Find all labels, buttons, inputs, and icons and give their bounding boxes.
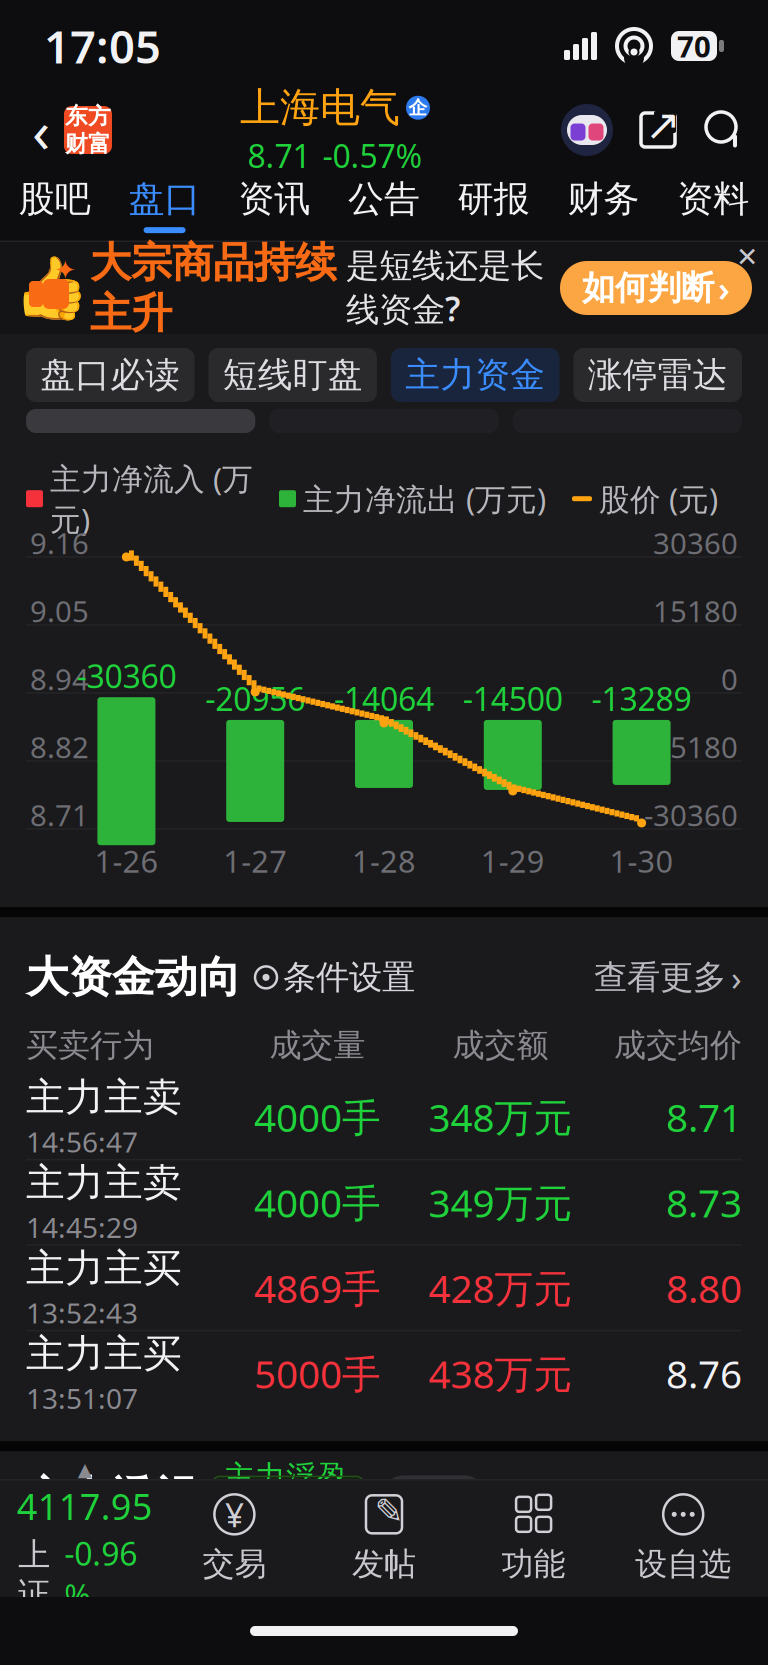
staticText: -14500 (463, 677, 563, 720)
staticText: 主力净流入 (万元) (50, 458, 253, 539)
button[interactable]: 条件设置 (241, 957, 415, 998)
staticText: -0.96% (64, 1532, 137, 1617)
staticText: 1-27 (223, 840, 287, 881)
staticText: 股吧 (19, 177, 91, 221)
staticText: 公告 (348, 177, 420, 221)
button[interactable]: 👍 (0, 242, 768, 334)
staticText: -13289 (592, 677, 692, 720)
button[interactable]: ¥ (160, 1492, 309, 1584)
staticText: 涨停雷达 (588, 354, 728, 396)
staticText: 8.71 (30, 795, 89, 834)
button[interactable]: 资讯 (219, 168, 329, 242)
staticText: 8.76 (666, 1348, 742, 1399)
button[interactable]: 东方财富 (64, 106, 112, 154)
staticText: 买卖行为 (26, 1026, 154, 1065)
button[interactable]: 盘口 (110, 168, 219, 242)
staticText: 8.71 (666, 1091, 742, 1142)
staticText: 股价 (元) (599, 478, 718, 519)
staticText: 成交额 (452, 1026, 548, 1065)
staticText: 研报 (458, 177, 530, 221)
staticText: 428万元 (428, 1262, 572, 1313)
staticText: 主力透视 (26, 1471, 198, 1524)
staticText: 70 (677, 26, 711, 65)
staticText: › (731, 954, 742, 1000)
staticText: 1-28 (352, 840, 416, 881)
staticText: 14:45:29 (26, 1208, 138, 1246)
staticText: 0 (721, 659, 738, 698)
button[interactable]: 主力资金 (391, 348, 559, 402)
staticText: 8.73 (666, 1177, 742, 1228)
button[interactable]: 主力主买 (0, 1246, 768, 1331)
staticText: 17:05 (44, 16, 161, 76)
staticText: › (718, 265, 730, 311)
staticText: -0.57% (322, 134, 422, 177)
staticText: 👍 (13, 253, 89, 323)
button[interactable]: 盘口必读 (26, 348, 194, 402)
button[interactable]: 主力主卖 (0, 1160, 768, 1246)
staticText: 主力资金 (405, 354, 545, 396)
button[interactable]: 收起 (382, 1475, 486, 1519)
staticText: 主力主买 (26, 1244, 182, 1292)
staticText: 主力净流出 (万元) (303, 478, 546, 519)
button[interactable]: Assistant (558, 101, 616, 159)
staticText: 15180 (653, 591, 738, 630)
staticText: 资料 (677, 177, 749, 221)
staticText: 成交均价 (614, 1026, 742, 1065)
staticText: 1-29 (481, 840, 545, 881)
staticText: 东方 (65, 102, 111, 130)
staticText: 349万元 (428, 1177, 572, 1228)
button[interactable]: ▲ (10, 1459, 160, 1617)
staticText: ↗ (645, 101, 681, 149)
button[interactable]: 设自选 (608, 1492, 758, 1584)
staticText: 收起 (402, 1478, 466, 1517)
staticText: 上证 (18, 1535, 50, 1614)
staticText: 8.80 (666, 1262, 742, 1313)
button[interactable]: ✎ (309, 1492, 459, 1584)
button[interactable]: Search (686, 104, 750, 156)
staticText: 13:51:07 (26, 1379, 138, 1417)
staticText: 条件设置 (283, 957, 415, 998)
staticText: ✦ (54, 255, 76, 285)
staticText: 成交量 (269, 1026, 365, 1065)
staticText: ✎ (374, 1492, 403, 1531)
staticText: 功能 (502, 1544, 566, 1584)
staticText: -20956 (205, 677, 305, 720)
staticText: -30360 (76, 655, 176, 697)
button[interactable]: 资料 (658, 168, 768, 242)
button[interactable]: 查看更多 (594, 1474, 742, 1520)
button[interactable]: 短线盯盘 (208, 348, 377, 402)
button[interactable]: 公告 (329, 168, 439, 242)
staticText: 如何判断 (582, 267, 714, 308)
button[interactable]: 研报 (439, 168, 549, 242)
staticText: 9.16 (30, 523, 89, 562)
button[interactable]: Share (616, 102, 686, 158)
staticText: ✕ (736, 242, 758, 272)
staticText: 4869手 (254, 1262, 381, 1313)
staticText: 主力浮盈率-1.91% (224, 1458, 352, 1537)
button[interactable]: 股吧 (0, 168, 110, 242)
button[interactable]: 主力主卖 (0, 1075, 768, 1160)
staticText: 1-26 (94, 840, 158, 881)
button[interactable]: 查看更多 (594, 954, 742, 1000)
staticText: 14:56:47 (26, 1123, 138, 1160)
staticText: -14064 (334, 677, 434, 720)
staticText: 438万元 (428, 1348, 572, 1399)
button[interactable]: Back (18, 100, 64, 160)
button[interactable]: 财务 (549, 168, 658, 242)
staticText: 盘口必读 (40, 354, 180, 396)
staticText: 348万元 (428, 1091, 572, 1142)
staticText: ▲ (78, 1459, 92, 1480)
staticText: 大资金动向 (26, 951, 241, 1004)
button[interactable]: 功能 (459, 1492, 608, 1584)
staticText: 9.05 (30, 591, 89, 630)
staticText: -30360 (644, 795, 738, 834)
staticText: 1-30 (610, 840, 674, 881)
staticText: 是短线还是长线资金? (346, 245, 544, 331)
staticText: 设自选 (635, 1544, 731, 1584)
staticText: ¥ (225, 1492, 244, 1536)
button[interactable]: 主力主买 (0, 1331, 768, 1415)
staticText: 8.71 (247, 134, 310, 177)
staticText: 4000手 (254, 1091, 381, 1142)
staticText: 4117.95 (17, 1482, 153, 1530)
button[interactable]: 涨停雷达 (573, 348, 742, 402)
